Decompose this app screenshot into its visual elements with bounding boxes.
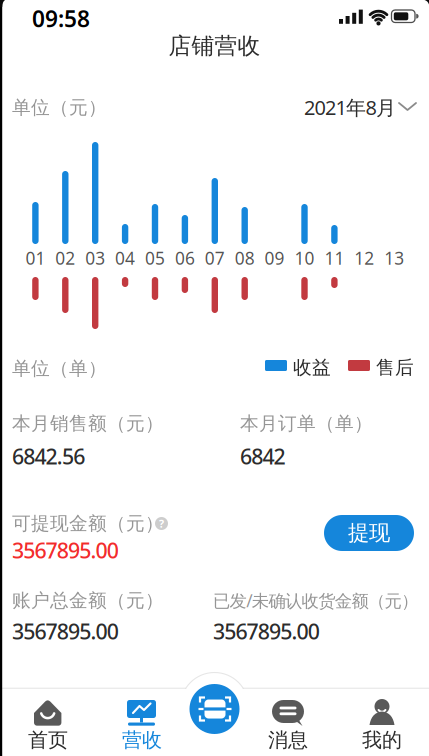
staticText: 10	[294, 246, 314, 269]
button[interactable]: 提现	[324, 515, 414, 551]
staticText: 07	[205, 246, 225, 269]
staticText: 已发/未确认收货金额（元）	[213, 589, 418, 612]
staticText: 04	[115, 246, 135, 269]
staticText: 2021年8月	[304, 94, 396, 121]
staticText: 首页	[28, 728, 68, 752]
staticText: 售后	[376, 356, 414, 379]
button[interactable]: 2021年8月	[266, 92, 417, 120]
staticText: 单位（元）	[12, 96, 107, 119]
staticText: 消息	[268, 728, 308, 752]
staticText: 3567895.00	[213, 617, 320, 645]
button[interactable]: 消息	[244, 688, 330, 756]
staticText: 6842.56	[12, 442, 85, 470]
staticText: 本月销售额（元）	[12, 412, 164, 435]
staticText: 3567895.00	[12, 617, 119, 645]
staticText: 05	[145, 246, 165, 269]
staticText: 本月订单（单）	[240, 412, 373, 435]
staticText: 09:58	[32, 3, 90, 34]
staticText: 收益	[293, 356, 331, 379]
staticText: 02	[55, 246, 75, 269]
staticText: 账户总金额（元）	[12, 589, 164, 612]
staticText: 01	[25, 246, 45, 269]
staticText: 单位（单）	[12, 357, 107, 380]
staticText: 13	[384, 246, 404, 269]
staticText: ?	[159, 516, 164, 531]
button[interactable]: 首页	[5, 688, 91, 756]
staticText: 6842	[240, 442, 286, 470]
staticText: 03	[85, 246, 105, 269]
staticText: 06	[175, 246, 195, 269]
staticText: 营收	[122, 728, 162, 752]
button[interactable]: 帮助	[155, 517, 168, 530]
staticText: 可提现金额（元）	[12, 512, 164, 535]
staticText: 3567895.00	[12, 536, 119, 564]
staticText: 09	[265, 246, 285, 269]
button[interactable]: 我的	[339, 688, 425, 756]
button[interactable]: 营收	[99, 688, 185, 756]
button[interactable]: 扫码	[185, 670, 244, 736]
staticText: 11	[324, 246, 344, 269]
staticText: 12	[354, 246, 374, 269]
staticText: 店铺营收	[168, 32, 260, 60]
staticText: 提现	[348, 520, 390, 546]
staticText: 我的	[362, 728, 402, 752]
staticText: 08	[235, 246, 255, 269]
